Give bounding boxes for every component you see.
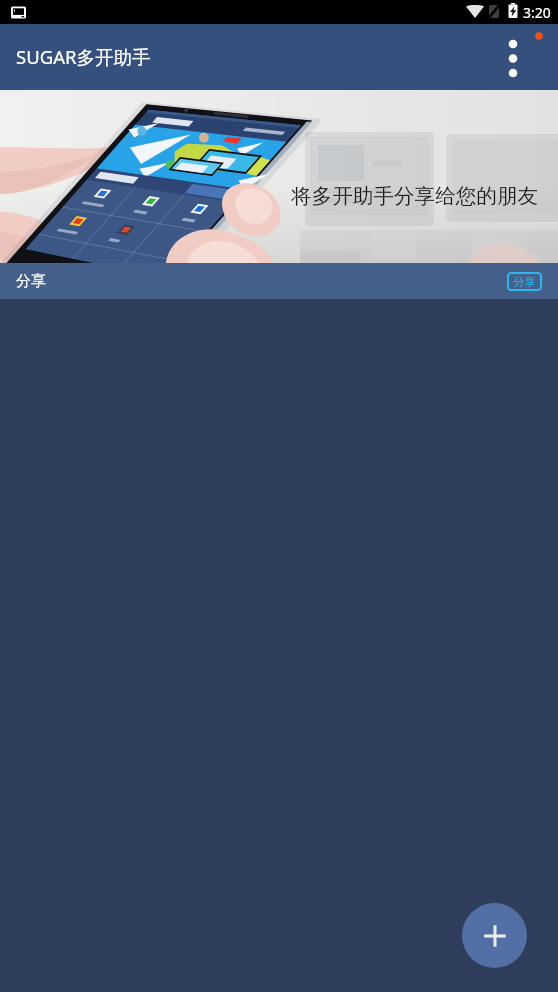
button[interactable]: More options: [495, 24, 558, 90]
staticText: 3:20: [523, 3, 551, 22]
staticText: 将多开助手分享给您的朋友: [291, 183, 539, 209]
staticText: 分享: [16, 272, 46, 291]
button[interactable]: 分享: [507, 272, 542, 291]
staticText: SUGAR多开助手: [16, 44, 151, 69]
staticText: 分享: [513, 275, 536, 289]
button[interactable]: 分享: [0, 263, 558, 299]
button[interactable]: Add: [462, 903, 527, 968]
